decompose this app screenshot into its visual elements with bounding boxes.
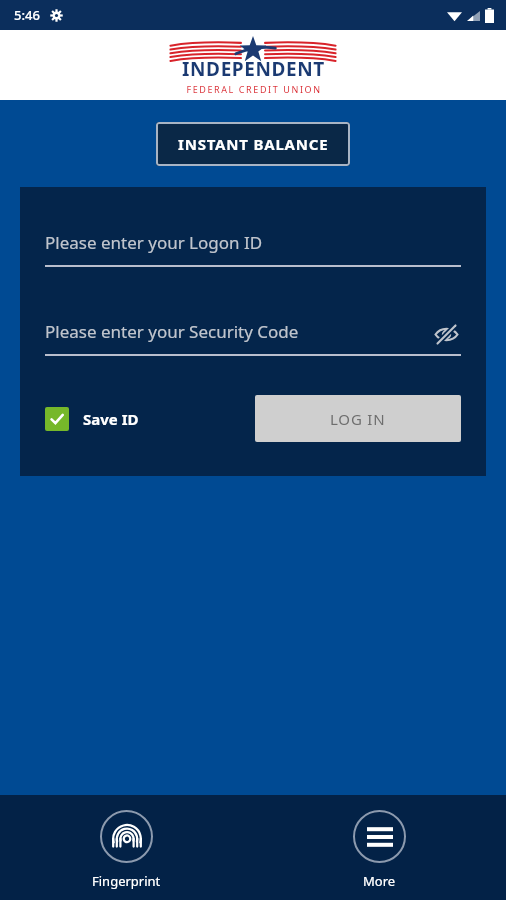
staticText: Fingerprint xyxy=(92,872,161,890)
staticText: FEDERAL CREDIT UNION xyxy=(186,83,322,95)
button[interactable]: Fingerprint xyxy=(74,808,179,892)
other: Fingerprint xyxy=(112,822,142,852)
button[interactable]: Save ID xyxy=(45,407,139,431)
staticText: More xyxy=(363,872,396,890)
staticText: 5:46 xyxy=(14,6,40,24)
button[interactable]: INSTANT BALANCE xyxy=(156,122,350,166)
staticText: LOG IN xyxy=(330,409,386,429)
staticText: Please enter your Logon ID xyxy=(45,231,263,254)
button[interactable]: More xyxy=(335,808,424,892)
other: More xyxy=(367,824,393,850)
button[interactable]: Please enter your Logon ID xyxy=(45,231,461,267)
button[interactable]: LOG IN xyxy=(255,395,461,442)
button[interactable]: Please enter your Security Code xyxy=(45,320,299,343)
staticText: INSTANT BALANCE xyxy=(178,134,329,154)
button[interactable]: Show security code xyxy=(431,319,461,349)
staticText: Save ID xyxy=(83,409,139,429)
staticText: INDEPENDENT xyxy=(182,56,325,82)
